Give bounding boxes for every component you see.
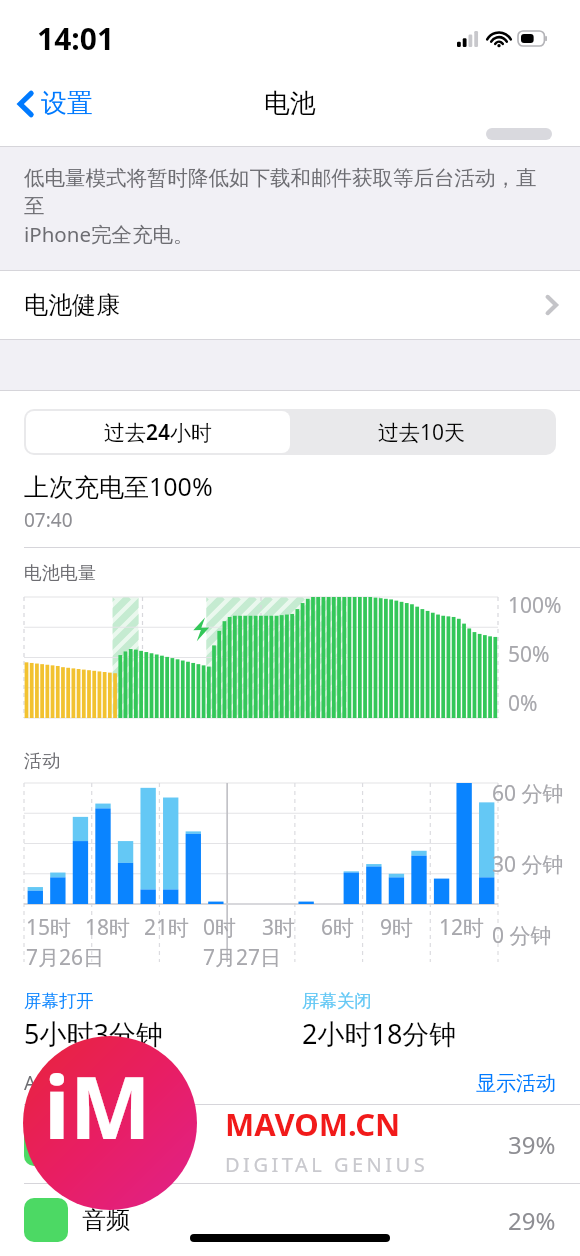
staticText: 21时: [144, 913, 190, 942]
staticText: 屏幕打开: [24, 990, 94, 1012]
staticText: 微信: [82, 1129, 508, 1159]
staticText: 0%: [508, 689, 538, 718]
staticText: 60 分钟: [492, 779, 564, 808]
button[interactable]: 音频: [0, 1184, 580, 1256]
button[interactable]: 微信: [0, 1105, 580, 1183]
staticText: 显示活动: [476, 1071, 556, 1096]
staticText: 3时: [262, 913, 296, 942]
staticText: 2小时18分钟: [302, 1015, 457, 1052]
staticText: 设置: [41, 87, 93, 120]
staticText: 12时: [439, 913, 485, 942]
staticText: App使用时长: [24, 1070, 476, 1096]
staticText: 活动: [24, 750, 60, 773]
button[interactable]: 过去24小时: [26, 411, 290, 453]
staticText: 7月26日: [26, 943, 105, 972]
button[interactable]: 过去10天: [290, 411, 554, 453]
staticText: 电池健康: [24, 290, 545, 320]
staticText: 过去24小时: [104, 418, 213, 447]
staticText: 100%: [508, 591, 562, 620]
button[interactable]: 设置: [14, 81, 97, 126]
staticText: MAVOM.CN: [225, 1103, 401, 1145]
staticText: 0 分钟: [492, 921, 552, 950]
staticText: 0时: [203, 913, 237, 942]
staticText: 14:01: [37, 18, 115, 59]
staticText: 5小时3分钟: [24, 1015, 163, 1052]
staticText: 6时: [321, 913, 355, 942]
staticText: 低电量模式将暂时降低如下载和邮件获取等后台活动，直至 iPhone完全充电。: [24, 165, 550, 248]
button[interactable]: 显示活动: [476, 1071, 556, 1096]
staticText: 07:40: [24, 507, 73, 533]
staticText: 15时: [26, 913, 72, 942]
staticText: 上次充电至100%: [24, 469, 213, 503]
staticText: 29%: [508, 1204, 556, 1237]
button[interactable]: 电池健康: [0, 271, 580, 339]
staticText: 电池: [264, 87, 316, 120]
staticText: 屏幕关闭: [302, 990, 372, 1012]
staticText: 9时: [380, 913, 414, 942]
staticText: 30 分钟: [492, 850, 564, 879]
staticText: 过去10天: [378, 418, 466, 447]
staticText: 音频: [82, 1205, 508, 1235]
staticText: 电池电量: [24, 562, 96, 585]
staticText: DIGITAL GENIUS: [225, 1151, 429, 1178]
staticText: 39%: [508, 1128, 556, 1161]
staticText: iM: [44, 1047, 151, 1164]
staticText: 18时: [85, 913, 131, 942]
staticText: 7月27日: [203, 943, 282, 972]
staticText: 50%: [508, 640, 550, 669]
button[interactable]: [486, 128, 552, 140]
